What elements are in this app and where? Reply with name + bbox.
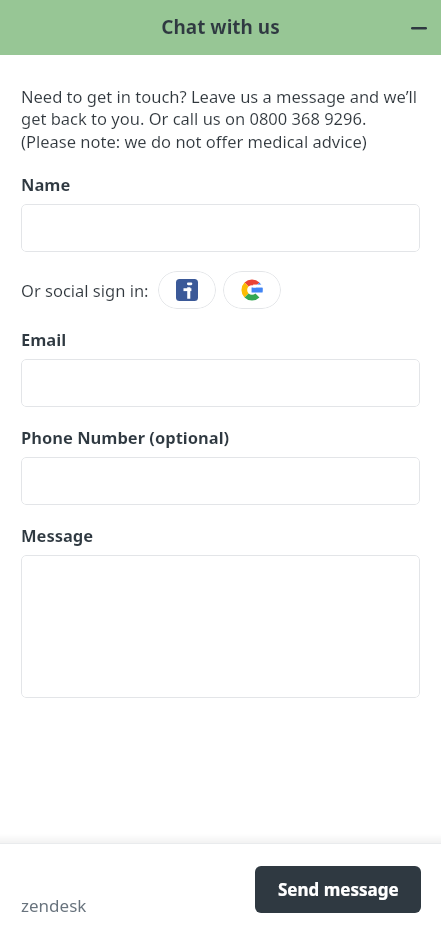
button[interactable]: Send message (255, 866, 421, 913)
staticText: Or social sign in: (21, 279, 149, 301)
staticText: zendesk (21, 894, 87, 917)
button[interactable] (21, 555, 420, 698)
staticText: Phone Number (optional) (21, 426, 230, 448)
staticText: Need to get in touch? Leave us a message… (21, 85, 420, 152)
staticText: Name (21, 173, 71, 195)
staticText: Message (21, 524, 94, 546)
staticText: Chat with us (161, 14, 280, 40)
button[interactable]: zendesk (21, 894, 87, 917)
button[interactable] (21, 359, 420, 407)
button[interactable] (21, 204, 420, 252)
button[interactable]: Minimize (397, 6, 441, 50)
button[interactable]: Sign in with Google (223, 271, 281, 309)
staticText: Email (21, 328, 67, 350)
staticText: Send message (278, 878, 399, 901)
button[interactable] (21, 457, 420, 505)
button[interactable]: Sign in with Facebook (158, 271, 216, 309)
